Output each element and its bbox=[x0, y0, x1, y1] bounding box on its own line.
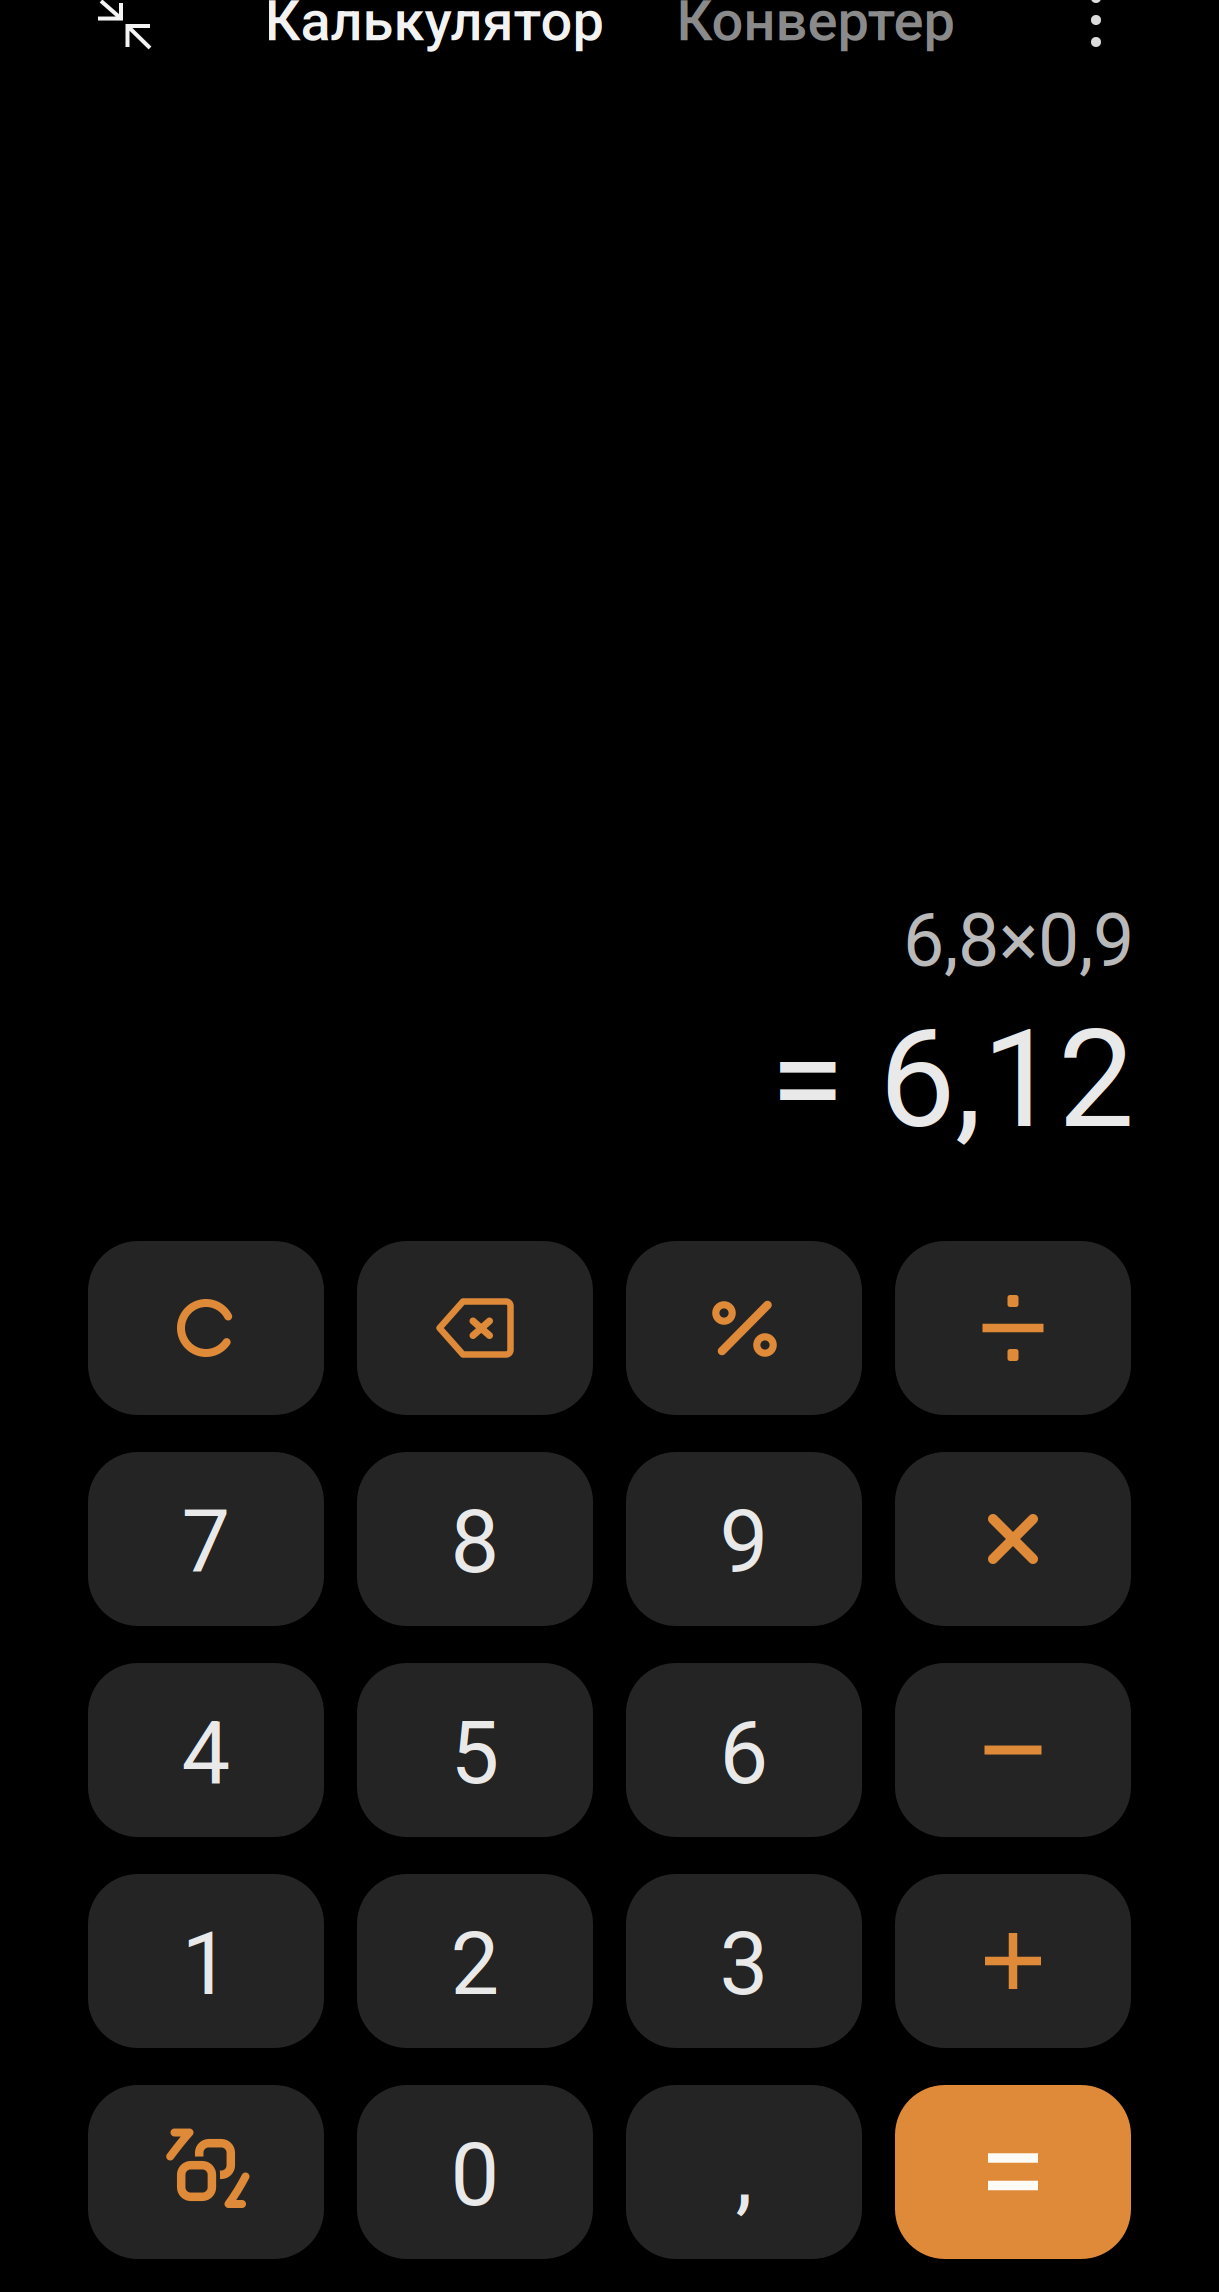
staticText: 1 bbox=[181, 1914, 230, 2015]
button[interactable]: Delete bbox=[357, 1241, 593, 1415]
staticText: 5 bbox=[450, 1703, 499, 1804]
button[interactable]: 3 bbox=[626, 1874, 862, 2048]
staticText: Калькулятор bbox=[264, 0, 603, 54]
staticText: 7 bbox=[181, 1492, 230, 1593]
button[interactable]: Scientific bbox=[88, 2085, 324, 2259]
button[interactable]: 1 bbox=[88, 1874, 324, 2048]
button[interactable]: Калькулятор bbox=[264, 0, 603, 54]
button[interactable]: Конвертер bbox=[676, 0, 954, 54]
button[interactable]: 9 bbox=[626, 1452, 862, 1626]
button[interactable]: 6 bbox=[626, 1663, 862, 1837]
button[interactable]: Clear bbox=[88, 1241, 324, 1415]
staticText: 8 bbox=[450, 1492, 499, 1593]
staticText: 4 bbox=[181, 1703, 230, 1804]
staticText: 0 bbox=[450, 2125, 499, 2226]
button[interactable]: Divide bbox=[895, 1241, 1131, 1415]
button[interactable]: Multiply bbox=[895, 1452, 1131, 1626]
staticText: 6 bbox=[719, 1703, 768, 1804]
button[interactable]: 7 bbox=[88, 1452, 324, 1626]
button[interactable]: 5 bbox=[357, 1663, 593, 1837]
staticText: 9 bbox=[719, 1492, 768, 1593]
button[interactable]: 8 bbox=[357, 1452, 593, 1626]
staticText: = 6,12 bbox=[770, 1000, 1134, 1159]
staticText: 6,8×0,9 bbox=[903, 898, 1134, 984]
staticText: 2 bbox=[450, 1914, 499, 2015]
staticText: 3 bbox=[719, 1914, 768, 2015]
button[interactable]: 2 bbox=[357, 1874, 593, 2048]
staticText: Конвертер bbox=[676, 0, 954, 54]
button[interactable]: Add bbox=[895, 1874, 1131, 2048]
button[interactable]: Equals bbox=[895, 2085, 1131, 2259]
button[interactable]: Percent bbox=[626, 1241, 862, 1415]
button[interactable]: 0 bbox=[357, 2085, 593, 2259]
button[interactable]: Subtract bbox=[895, 1663, 1131, 1837]
button[interactable]: 4 bbox=[88, 1663, 324, 1837]
staticText: , bbox=[735, 2123, 752, 2225]
button[interactable]: More options bbox=[1099, 0, 1219, 72]
button[interactable]: , bbox=[626, 2085, 862, 2259]
